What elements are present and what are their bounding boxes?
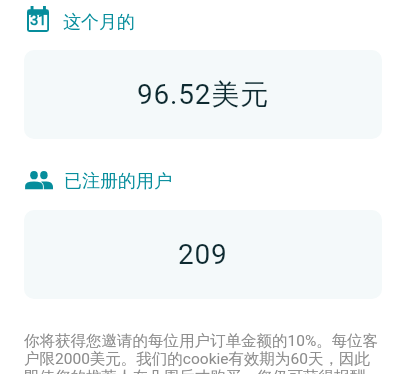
- staticText: 已注册的用户: [64, 170, 172, 193]
- staticText: 31: [30, 11, 47, 29]
- staticText: 209: [178, 238, 228, 271]
- button[interactable]: Registered users: [25, 171, 393, 194]
- other: Registered users: [25, 171, 53, 190]
- staticText: 你将获得您邀请的每位用户订单金额的10%。每位客户限2000美元。我们的cook…: [24, 331, 382, 374]
- staticText: 这个月的: [63, 11, 135, 34]
- other: Calendar: [27, 6, 49, 32]
- button[interactable]: Calendar: [27, 6, 393, 32]
- button[interactable]: 209: [24, 210, 382, 299]
- button[interactable]: 96.52美元: [24, 50, 382, 139]
- staticText: 96.52美元: [137, 77, 269, 112]
